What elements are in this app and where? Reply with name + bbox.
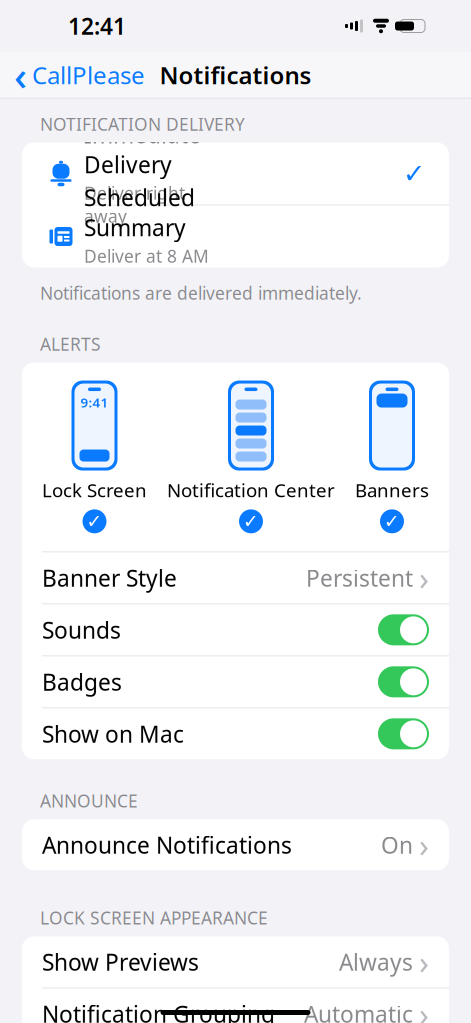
staticText: ✓ bbox=[86, 511, 102, 532]
staticText: Banner Style bbox=[42, 563, 177, 593]
button[interactable]: Sounds bbox=[22, 604, 449, 655]
button[interactable]: Show on Mac bbox=[22, 708, 449, 759]
staticText: Notification Grouping bbox=[42, 999, 275, 1023]
button[interactable]: Scheduled Summary bbox=[22, 205, 449, 267]
staticText: Badges bbox=[42, 667, 122, 697]
staticText: ALERTS bbox=[40, 332, 101, 355]
staticText: Notifications are delivered immediately. bbox=[40, 281, 362, 304]
staticText: Announce Notifications bbox=[42, 830, 292, 860]
staticText: 12:41 bbox=[68, 11, 126, 41]
staticText: ‹ bbox=[14, 48, 27, 101]
staticText: Show Previews bbox=[42, 947, 199, 977]
staticText: NOTIFICATION DELIVERY bbox=[40, 112, 245, 135]
staticText: Notifications bbox=[159, 59, 311, 91]
staticText: Deliver right away bbox=[84, 182, 185, 228]
staticText: › bbox=[419, 993, 429, 1023]
button[interactable]: Notification Grouping bbox=[22, 988, 449, 1023]
staticText: Always bbox=[339, 947, 413, 977]
button[interactable]: 9:41 bbox=[42, 379, 147, 535]
staticText: 9:41 bbox=[80, 394, 108, 411]
staticText: ✓ bbox=[403, 158, 425, 189]
staticText: Banners bbox=[355, 478, 429, 502]
staticText: › bbox=[419, 941, 429, 983]
staticText: ✓ bbox=[243, 511, 259, 532]
button[interactable]: ‹ bbox=[0, 44, 145, 105]
staticText: › bbox=[419, 824, 429, 866]
staticText: Sounds bbox=[42, 615, 121, 645]
staticText: Persistent bbox=[306, 563, 413, 593]
staticText: LOCK SCREEN APPEARANCE bbox=[40, 906, 268, 929]
button[interactable]: Show Previews bbox=[22, 936, 449, 987]
staticText: ✓ bbox=[384, 511, 400, 532]
staticText: Notification Center bbox=[167, 478, 335, 502]
button[interactable]: Notification Center bbox=[167, 379, 335, 535]
staticText: Deliver at 8 AM and 6 PM bbox=[84, 245, 209, 291]
staticText: Show on Mac bbox=[42, 719, 184, 749]
staticText: CallPlease bbox=[32, 59, 145, 91]
staticText: Automatic bbox=[304, 999, 413, 1023]
button[interactable]: Banner Style bbox=[22, 552, 449, 603]
button[interactable]: Banners bbox=[355, 379, 429, 535]
button[interactable]: Announce Notifications bbox=[22, 819, 449, 870]
staticText: Immediate Delivery bbox=[84, 119, 201, 180]
button[interactable]: Badges bbox=[22, 656, 449, 707]
button[interactable]: Immediate Delivery bbox=[22, 142, 449, 204]
staticText: Lock Screen bbox=[42, 478, 147, 502]
staticText: Scheduled Summary bbox=[84, 182, 195, 243]
staticText: › bbox=[419, 557, 429, 599]
staticText: ANNOUNCE bbox=[40, 789, 138, 812]
staticText: On bbox=[381, 830, 413, 860]
